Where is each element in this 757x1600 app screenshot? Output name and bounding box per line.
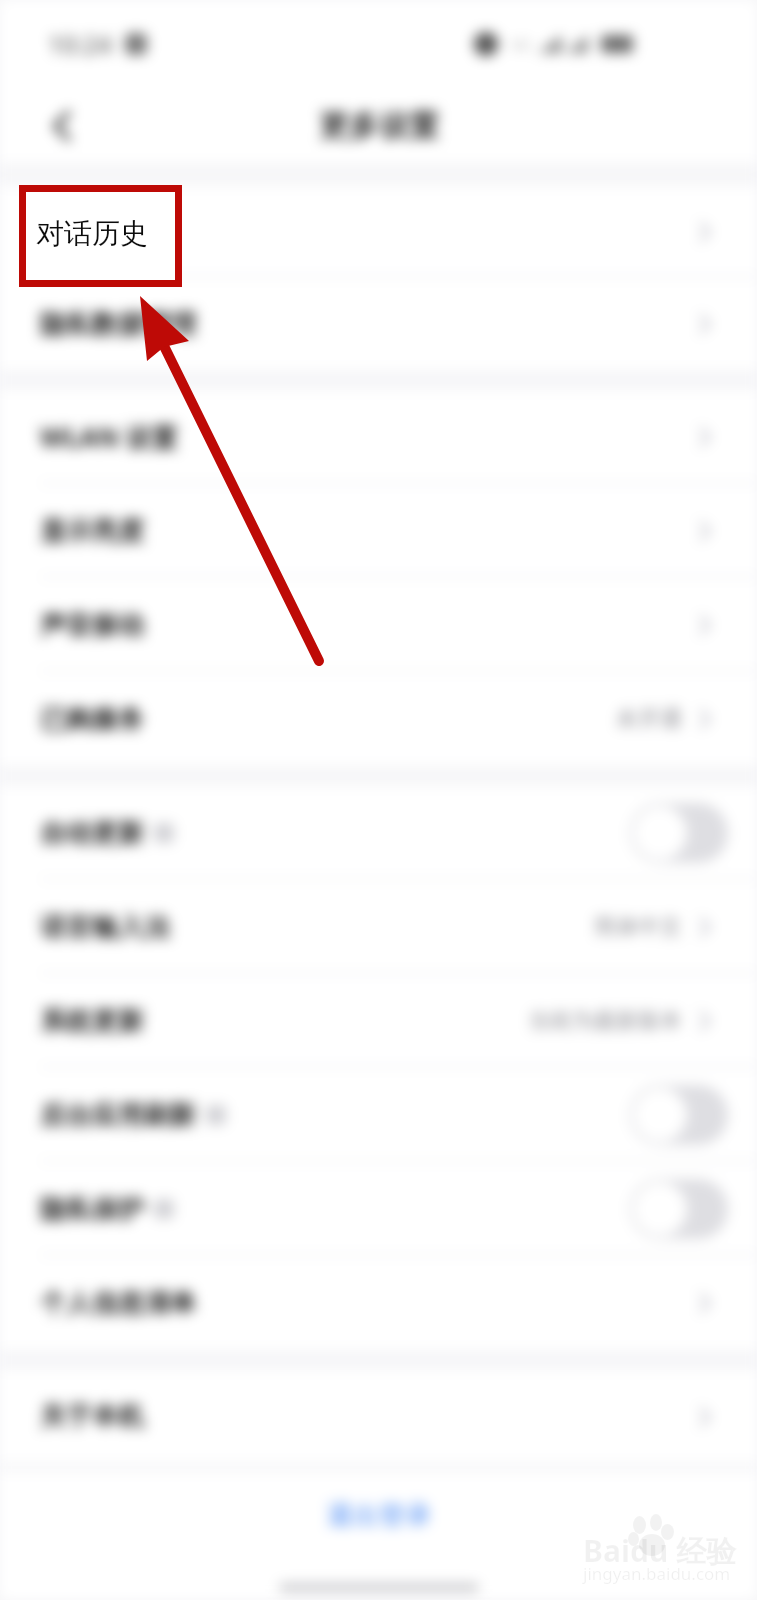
staticText: 个人信息清单 <box>40 1287 196 1320</box>
staticText: 隐私保护 <box>40 1193 144 1226</box>
button[interactable]: 语言输入法 <box>0 880 757 974</box>
button[interactable]: 退出登录 <box>309 1487 449 1544</box>
button[interactable]: Back <box>30 94 94 158</box>
staticText: 对话历史 <box>40 216 144 249</box>
button[interactable]: 个人信息清单 <box>0 1256 757 1350</box>
staticText: 声音振动 <box>40 609 144 642</box>
button[interactable]: WLAN 设置 <box>0 390 757 484</box>
staticText: Baidu 经验 <box>583 1530 737 1571</box>
staticText: 简体中文 <box>594 913 682 941</box>
staticText: 显示亮度 <box>40 515 144 548</box>
button[interactable]: Toggle <box>630 1179 728 1239</box>
button[interactable]: 对话历史 <box>0 186 757 278</box>
staticText: 关于本机 <box>40 1400 144 1433</box>
staticText: 隐私数据管理 <box>40 308 196 341</box>
button[interactable]: 系统更新 <box>0 974 757 1068</box>
button[interactable]: 隐私数据管理 <box>0 278 757 370</box>
button[interactable]: 后台应用刷新 <box>0 1068 757 1162</box>
staticText: 当前为最新版本 <box>528 1007 682 1035</box>
button[interactable]: 关于本机 <box>0 1370 757 1463</box>
staticText: 退出登录 <box>327 1499 431 1532</box>
button[interactable]: 声音振动 <box>0 578 757 672</box>
button[interactable]: 已购服务 <box>0 672 757 766</box>
staticText: 系统更新 <box>40 1005 144 1038</box>
staticText: 自动更新 <box>40 817 144 850</box>
staticText: 语言输入法 <box>40 911 170 944</box>
button[interactable]: 自动更新 <box>0 786 757 880</box>
button[interactable]: 显示亮度 <box>0 484 757 578</box>
staticText: WLAN 设置 <box>40 419 178 455</box>
staticText: 未开通 <box>616 705 682 733</box>
staticText: 10:24 <box>48 27 113 61</box>
button[interactable]: 隐私保护 <box>0 1162 757 1256</box>
staticText: 更多设置 <box>319 107 439 145</box>
staticText: 已购服务 <box>40 703 144 736</box>
staticText: jingyan.baidu.com <box>583 1562 731 1585</box>
staticText: 对话历史 <box>36 216 148 251</box>
button[interactable]: Toggle <box>630 803 728 863</box>
staticText: 后台应用刷新 <box>40 1099 196 1132</box>
button[interactable]: Toggle <box>630 1085 728 1145</box>
